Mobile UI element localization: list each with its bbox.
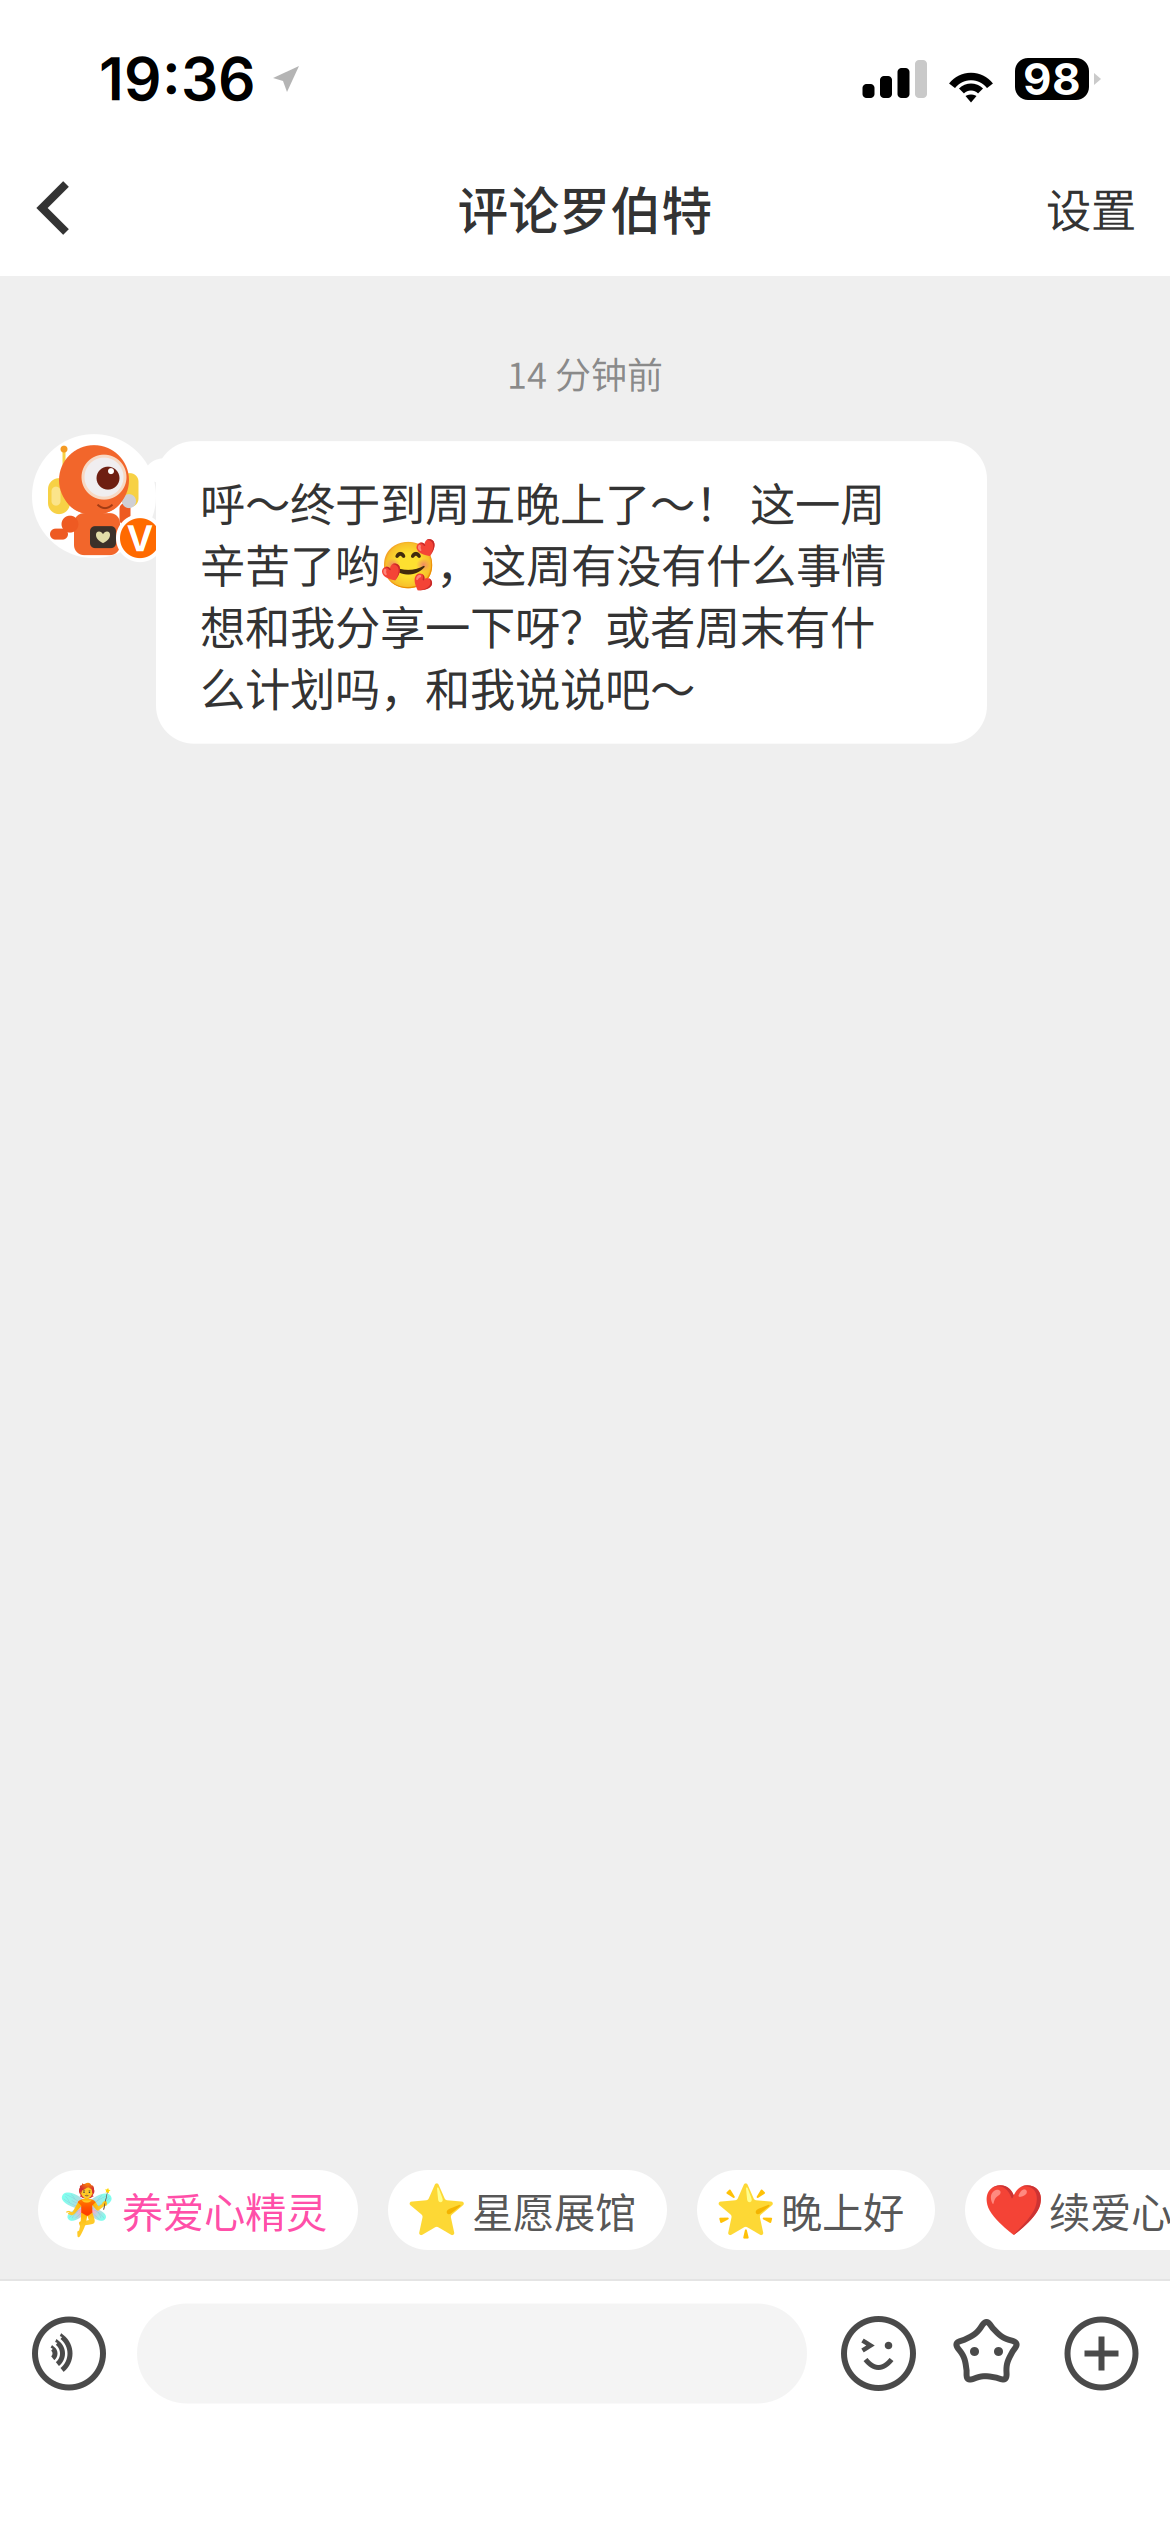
staticText: 星愿展馆: [472, 2180, 636, 2240]
button[interactable]: More: [1067, 2303, 1170, 2404]
button[interactable]: Back: [0, 152, 110, 264]
staticText: 19:36: [99, 43, 256, 114]
staticText: ⭐: [405, 2181, 466, 2239]
staticText: 设置: [1046, 175, 1136, 241]
staticText: 续爱心愿: [1049, 2180, 1170, 2240]
staticText: ❤️: [982, 2181, 1043, 2239]
button[interactable]: 🧚: [38, 2170, 358, 2250]
staticText: 评论罗伯特: [457, 171, 712, 245]
button[interactable]: Emoji: [807, 2303, 951, 2404]
button[interactable]: 设置: [1006, 145, 1170, 271]
button[interactable]: ⭐: [388, 2170, 667, 2250]
staticText: 晚上好: [781, 2180, 904, 2240]
button[interactable]: ❤️: [965, 2170, 1170, 2250]
staticText: 98: [1023, 52, 1081, 106]
staticText: V: [127, 516, 153, 560]
staticText: 养爱心精灵: [122, 2180, 327, 2240]
staticText: 呼～终于到周五晚上了～！ 这一周辛苦了哟🥰，这周有没有什么事情想和我分享一下呀？…: [200, 469, 886, 720]
button[interactable]: Voice message: [0, 2303, 137, 2403]
staticText: 14 分钟前: [507, 347, 663, 399]
button[interactable]: Stickers: [951, 2303, 1067, 2404]
staticText: 🧚: [55, 2181, 116, 2239]
button[interactable]: 🌟: [697, 2170, 935, 2250]
staticText: 🌟: [714, 2181, 775, 2239]
